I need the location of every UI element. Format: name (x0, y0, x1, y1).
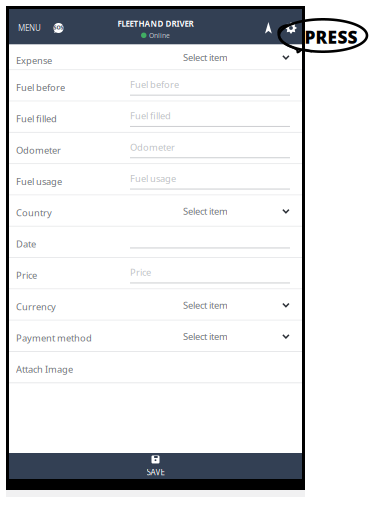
staticText: Select item (183, 330, 228, 343)
button[interactable]: Date (9, 227, 302, 258)
staticText: MENU (18, 23, 41, 33)
button[interactable]: MENU (14, 17, 45, 39)
button[interactable]: Country (9, 195, 302, 227)
staticText: Online (149, 31, 170, 40)
button[interactable]: Navigation (261, 17, 276, 39)
button[interactable]: Expense (9, 44, 302, 70)
staticText: Fuel usage (130, 172, 176, 185)
staticText: FLEETHAND DRIVER (117, 18, 193, 29)
button[interactable]: Currency (9, 289, 302, 321)
button[interactable]: Price (9, 258, 302, 289)
staticText: Select item (183, 205, 228, 217)
staticText: Price (130, 266, 151, 278)
button[interactable]: Fuel filled (9, 102, 302, 133)
staticText: Select item (183, 299, 228, 311)
button[interactable]: Fuel usage (9, 164, 302, 195)
staticText: SAVE (146, 467, 164, 477)
staticText: SOS (53, 24, 63, 31)
staticText: Fuel filled (16, 113, 57, 125)
button[interactable]: Settings (282, 18, 300, 38)
staticText: Fuel usage (16, 175, 62, 188)
button[interactable]: SAVE (9, 453, 302, 479)
staticText: Fuel before (130, 78, 179, 91)
staticText: Currency (16, 300, 56, 313)
staticText: Expense (16, 54, 52, 66)
staticText: Price (16, 269, 37, 281)
button[interactable]: Fuel before (9, 70, 302, 102)
staticText: Payment method (16, 332, 92, 344)
staticText: Country (16, 206, 52, 219)
staticText: Odometer (16, 144, 61, 156)
staticText: Fuel filled (130, 110, 171, 122)
staticText: PRESS (304, 25, 357, 48)
button[interactable]: Payment method (9, 321, 302, 352)
staticText: Fuel before (16, 81, 65, 94)
button[interactable]: SOS chat (53, 22, 64, 33)
staticText: Date (16, 238, 36, 250)
staticText: Attach Image (16, 363, 73, 375)
staticText: Odometer (130, 141, 175, 153)
button[interactable]: Attach Image (9, 352, 302, 383)
button[interactable]: Odometer (9, 133, 302, 164)
staticText: Select item (183, 51, 228, 63)
